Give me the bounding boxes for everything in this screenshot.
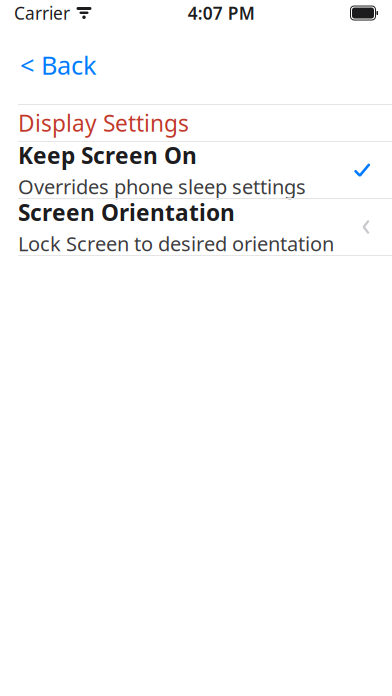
button[interactable]: Screen Orientation [0, 199, 392, 255]
button[interactable]: < Back [0, 38, 111, 92]
staticText: Screen Orientation [18, 197, 235, 227]
staticText: Display Settings [18, 108, 189, 138]
staticText: Keep Screen On [18, 140, 197, 170]
staticText: 4:07 PM [188, 1, 255, 24]
staticText: < Back [20, 48, 97, 82]
staticText: Lock Screen to desired orientation [18, 230, 334, 257]
staticText: Carrier [14, 1, 70, 24]
staticText: Overrides phone sleep settings [18, 173, 306, 200]
button[interactable]: Keep Screen On [0, 142, 392, 198]
